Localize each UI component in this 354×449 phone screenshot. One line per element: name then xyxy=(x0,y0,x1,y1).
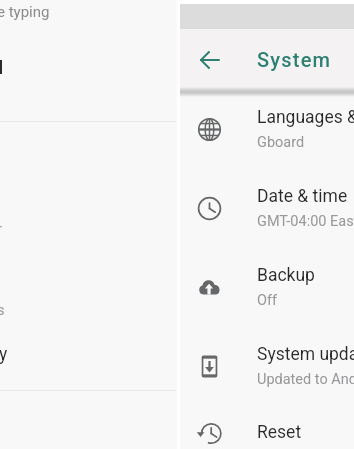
staticText: ry xyxy=(0,344,8,365)
staticText: s xyxy=(0,302,5,319)
staticText: System xyxy=(257,48,332,71)
button[interactable]: Back xyxy=(191,41,229,79)
button[interactable]: Reset xyxy=(180,405,354,449)
staticText: Gboard xyxy=(257,134,305,151)
staticText: Languages & input xyxy=(257,107,354,128)
staticText: r xyxy=(0,221,2,238)
button[interactable]: Date & time xyxy=(180,169,354,248)
staticText: e typing xyxy=(0,3,50,21)
button[interactable]: System updates xyxy=(180,327,354,406)
button[interactable]: Languages & input xyxy=(180,90,354,169)
staticText: Off xyxy=(257,292,278,309)
staticText: Backup xyxy=(257,265,315,286)
staticText: GMT-04:00 Eastern xyxy=(257,213,354,230)
button[interactable]: Backup xyxy=(180,248,354,327)
staticText: System updates xyxy=(257,344,354,365)
staticText: Reset xyxy=(257,422,302,443)
staticText: Date & time xyxy=(257,186,348,207)
staticText: Updated to Android 10 xyxy=(257,371,354,388)
